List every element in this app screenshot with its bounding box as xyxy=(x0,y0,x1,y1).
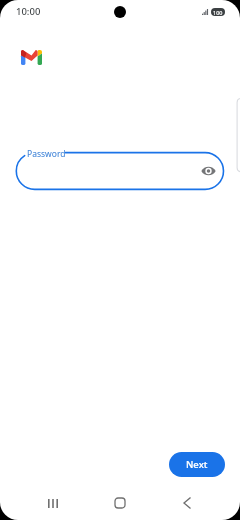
staticText: Password xyxy=(27,148,66,160)
button[interactable]: Recent apps xyxy=(33,488,73,516)
button[interactable]: Back xyxy=(167,488,207,516)
button[interactable]: Password xyxy=(16,153,224,190)
staticText: 10:00 xyxy=(16,5,41,18)
staticText: Next xyxy=(186,458,208,471)
staticText: 100 xyxy=(213,9,223,16)
button[interactable]: Home xyxy=(100,488,140,516)
button[interactable]: Show password xyxy=(199,162,217,180)
button[interactable]: Next xyxy=(169,452,225,477)
